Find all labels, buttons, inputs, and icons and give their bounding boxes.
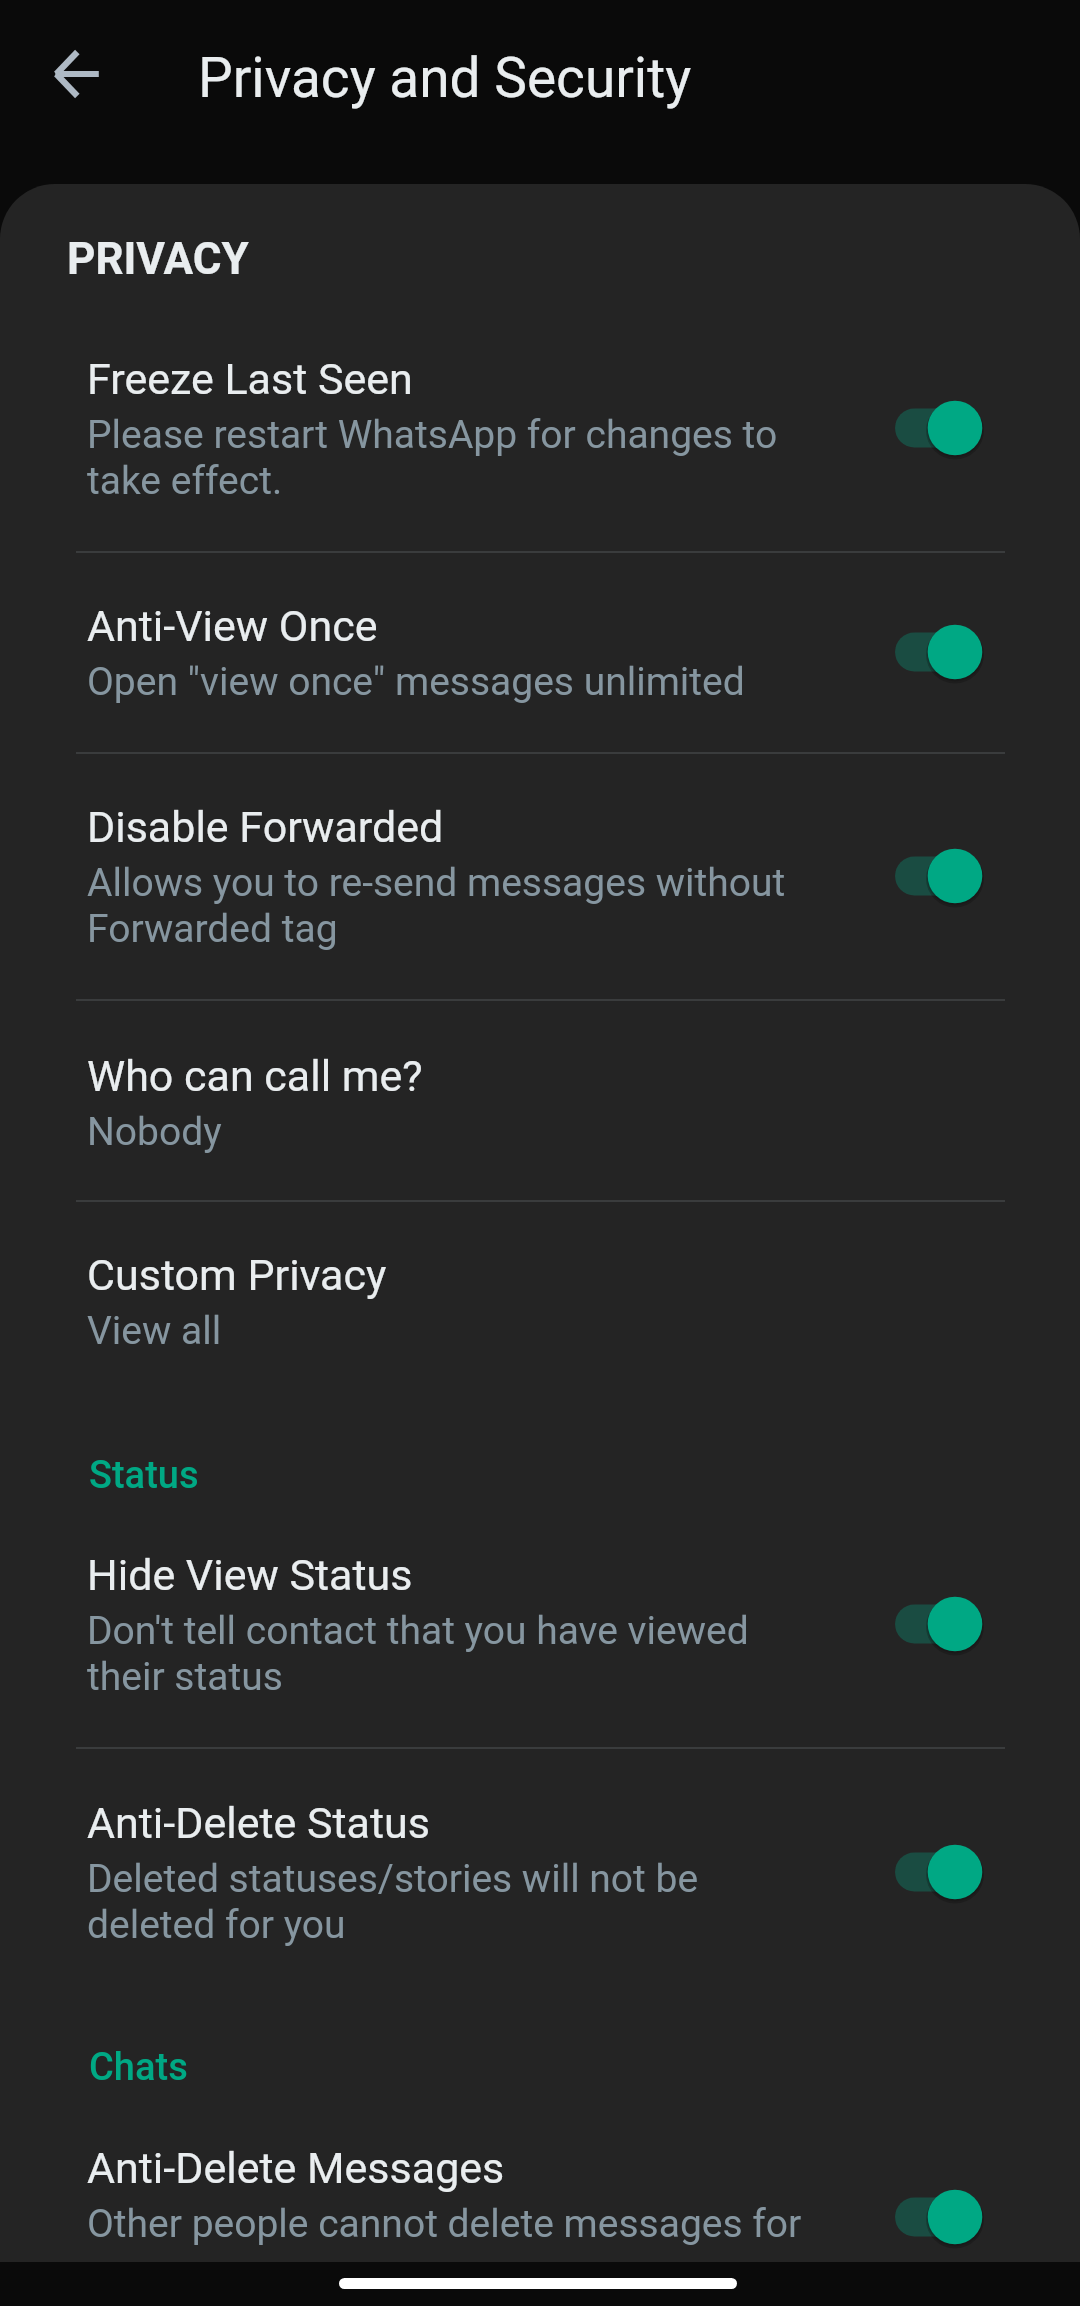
staticText: Privacy and Security bbox=[198, 46, 692, 110]
staticText: Disable Forwarded bbox=[87, 802, 444, 852]
button[interactable]: Anti-View Once bbox=[0, 601, 1080, 711]
button[interactable]: Anti-Delete Messages bbox=[895, 2162, 1043, 2262]
staticText: Chats bbox=[89, 2045, 188, 2090]
staticText: Anti-Delete Status bbox=[87, 1798, 430, 1848]
staticText: PRIVACY bbox=[67, 233, 249, 285]
staticText: Anti-View Once bbox=[87, 601, 378, 651]
staticText: Hide View Status bbox=[87, 1550, 413, 1600]
button[interactable]: Back bbox=[24, 24, 124, 124]
button[interactable]: Anti-Delete Status bbox=[0, 1798, 1080, 1948]
staticText: Other people cannot delete messages for … bbox=[87, 2201, 827, 2262]
staticText: View all bbox=[87, 1308, 827, 1354]
staticText: Deleted statuses/stories will not be del… bbox=[87, 1856, 827, 1948]
button[interactable]: Anti-Delete Status bbox=[895, 1817, 1043, 1927]
button[interactable]: Anti-View Once bbox=[895, 597, 1043, 707]
button[interactable]: Who can call me? bbox=[0, 1051, 1080, 1155]
staticText: Status bbox=[89, 1453, 199, 1498]
staticText: Anti-Delete Messages bbox=[87, 2143, 505, 2193]
staticText: Who can call me? bbox=[87, 1051, 423, 1101]
staticText: Custom Privacy bbox=[87, 1250, 387, 1300]
staticText: Please restart WhatsApp for changes to t… bbox=[87, 412, 827, 504]
button[interactable]: Custom Privacy bbox=[0, 1250, 1080, 1354]
button[interactable]: Disable Forwarded bbox=[895, 821, 1043, 931]
button[interactable]: Anti-Delete Messages bbox=[0, 2143, 1080, 2262]
button[interactable]: Hide View Status bbox=[895, 1569, 1043, 1679]
button[interactable]: Disable Forwarded bbox=[0, 802, 1080, 952]
button[interactable]: Freeze Last Seen bbox=[895, 373, 1043, 483]
staticText: Freeze Last Seen bbox=[87, 354, 413, 404]
staticText: Open "view once" messages unlimited bbox=[87, 659, 827, 705]
button[interactable]: Freeze Last Seen bbox=[0, 354, 1080, 504]
button[interactable]: Hide View Status bbox=[0, 1550, 1080, 1700]
staticText: Nobody bbox=[87, 1109, 827, 1155]
staticText: Allows you to re-send messages without F… bbox=[87, 860, 827, 952]
staticText: Don't tell contact that you have viewed … bbox=[87, 1608, 827, 1700]
